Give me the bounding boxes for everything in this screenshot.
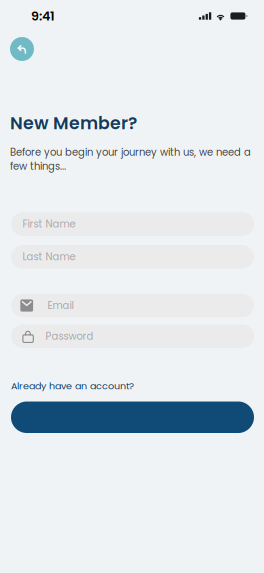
button[interactable]: Password bbox=[11, 324, 254, 348]
button[interactable]: Already have an account? bbox=[11, 379, 134, 392]
staticText: Email bbox=[47, 298, 73, 312]
staticText: Last Name bbox=[22, 250, 75, 264]
button[interactable]: Back bbox=[10, 37, 34, 61]
staticText: Already have an account? bbox=[11, 379, 134, 392]
staticText: Before you begin your journey with us, w… bbox=[10, 145, 251, 173]
staticText: First Name bbox=[22, 217, 75, 231]
staticText: Password bbox=[45, 329, 93, 343]
button[interactable]: First Name bbox=[11, 212, 254, 236]
button[interactable]: Email bbox=[11, 294, 254, 317]
staticText: 9:41 bbox=[31, 7, 55, 25]
staticText: New Member? bbox=[10, 111, 137, 135]
button[interactable]: Last Name bbox=[11, 245, 254, 269]
button[interactable]: Sign Up bbox=[11, 401, 254, 433]
